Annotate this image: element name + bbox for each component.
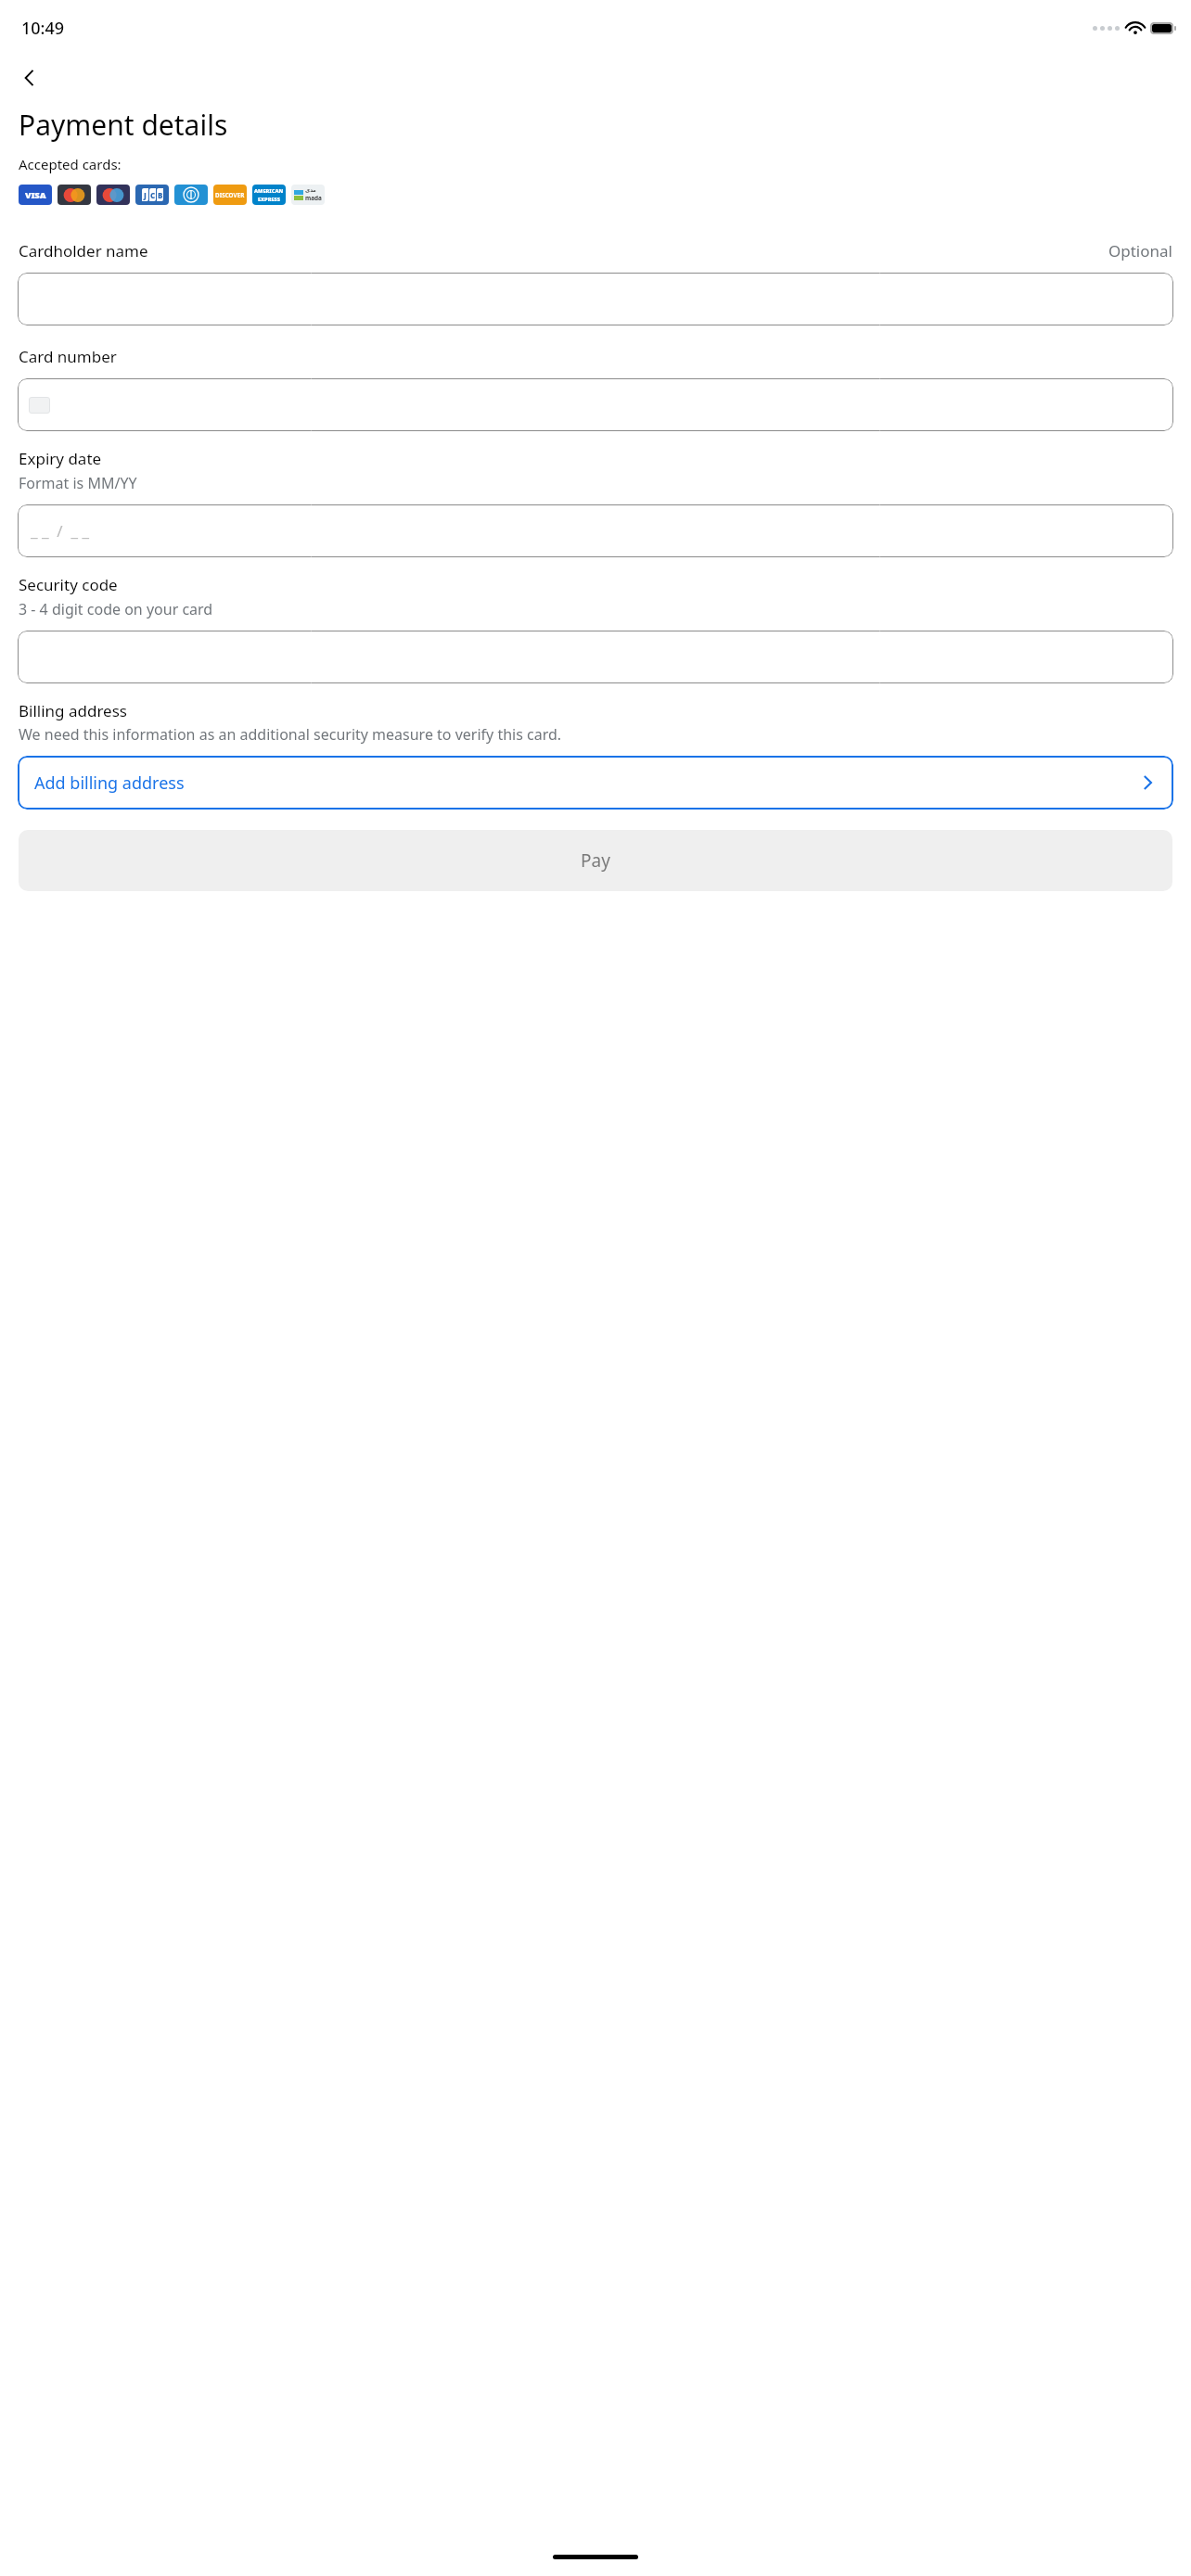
staticText: Expiry date bbox=[19, 448, 102, 469]
button[interactable] bbox=[18, 631, 1173, 683]
staticText: EXPRESS bbox=[258, 196, 280, 203]
staticText: Format is MM/YY bbox=[19, 473, 137, 493]
staticText: C bbox=[150, 190, 156, 200]
button[interactable]: Add billing address bbox=[18, 756, 1173, 810]
staticText: 3 - 4 digit code on your card bbox=[19, 599, 213, 619]
staticText: B bbox=[158, 190, 163, 200]
staticText: mada bbox=[305, 194, 322, 202]
button[interactable]: Pay bbox=[19, 830, 1172, 891]
staticText: DISCOVER bbox=[215, 191, 245, 198]
staticText: Add billing address bbox=[34, 772, 185, 795]
button[interactable] bbox=[18, 273, 1173, 325]
staticText: Pay bbox=[581, 848, 610, 873]
staticText: Security code bbox=[19, 574, 118, 595]
button[interactable] bbox=[18, 378, 1173, 431]
staticText: AMERICAN bbox=[254, 187, 284, 195]
button[interactable]: Back bbox=[7, 56, 52, 100]
staticText: J bbox=[144, 190, 147, 200]
staticText: 10:49 bbox=[21, 17, 65, 40]
staticText: VISA bbox=[25, 189, 46, 201]
staticText: Optional bbox=[1108, 240, 1172, 261]
staticText: Card number bbox=[19, 346, 117, 367]
staticText: مدى bbox=[305, 187, 316, 194]
staticText: We need this information as an additiona… bbox=[19, 724, 562, 745]
button[interactable]: _ _ / _ _ bbox=[18, 504, 1173, 557]
staticText: Accepted cards: bbox=[19, 155, 122, 173]
staticText: _ _ / _ _ bbox=[31, 520, 90, 542]
staticText: Cardholder name bbox=[19, 240, 148, 261]
staticText: Payment details bbox=[19, 106, 228, 144]
staticText: Billing address bbox=[19, 700, 127, 721]
